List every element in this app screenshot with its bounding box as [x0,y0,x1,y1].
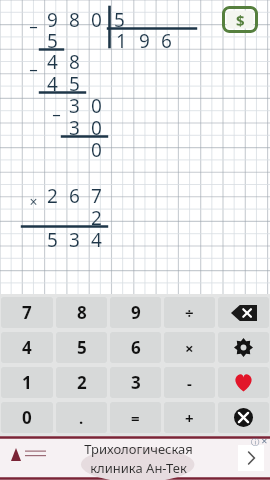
staticText: 3 [131,371,141,394]
staticText: 0 [91,137,102,159]
button[interactable]: Settings [218,332,269,363]
staticText: 2 [91,205,102,227]
staticText: 2 [77,371,87,394]
staticText: 1 [22,371,32,394]
staticText: 6 [69,183,80,205]
staticText: 9 [131,301,141,324]
staticText: 4 [47,71,58,93]
staticText: – [29,14,38,32]
staticText: 3 [69,93,80,115]
staticText: 4 [22,336,32,359]
staticText: 9 [47,7,58,29]
staticText: 5 [114,7,125,29]
staticText: 1 [116,28,127,50]
button[interactable]: + [164,402,215,433]
staticText: 8 [69,7,80,29]
button[interactable]: 6 [110,332,161,363]
staticText: 0 [91,115,102,137]
staticText: 0 [22,406,32,429]
button[interactable]: 8 [56,297,107,328]
button[interactable]: - [164,367,215,398]
button[interactable]: Favorite [218,367,269,398]
staticText: 7 [22,301,32,324]
button[interactable]: Advertisement [0,436,270,480]
staticText: 3 [69,227,80,249]
staticText: 8 [69,49,80,71]
staticText: 7 [91,183,102,205]
staticText: 0 [91,7,102,29]
staticText: 0 [91,93,102,115]
staticText: 5 [69,71,80,93]
staticText: 6 [131,336,141,359]
staticText: 9 [139,28,150,50]
staticText: × [29,192,38,210]
button[interactable]: Clear [218,402,269,433]
staticText: – [29,57,38,75]
staticText: 3 [69,115,80,137]
button[interactable]: . [56,402,107,433]
button[interactable]: 3 [110,367,161,398]
staticText: × [185,338,194,358]
staticText: - [187,373,192,393]
button[interactable]: 5 [56,332,107,363]
button[interactable]: 1 [1,367,53,398]
staticText: 4 [91,227,102,249]
staticText: 2 [47,183,58,205]
staticText: ⓘ [251,437,259,447]
staticText: клиника Ан-Тек [90,459,187,477]
button[interactable]: ÷ [164,297,215,328]
staticText: ✕ [261,437,268,446]
staticText: – [52,102,61,120]
staticText: 6 [161,28,172,50]
staticText: . [79,408,84,428]
staticText: 8 [77,301,87,324]
staticText: $ [236,10,245,30]
button[interactable]: × [164,332,215,363]
button[interactable]: 7 [1,297,53,328]
button[interactable]: Buy premium [222,6,258,33]
button[interactable]: 0 [1,402,53,433]
button[interactable]: Backspace [218,297,269,328]
button[interactable]: Open ad [238,445,264,471]
button[interactable]: 2 [56,367,107,398]
staticText: 5 [47,28,58,50]
staticText: = [131,408,140,428]
staticText: Трихологическая [84,440,193,458]
staticText: + [185,408,194,428]
staticText: 4 [47,49,58,71]
button[interactable]: 4 [1,332,53,363]
staticText: 5 [77,336,87,359]
staticText: 5 [47,227,58,249]
button[interactable]: = [110,402,161,433]
button[interactable]: 9 [110,297,161,328]
staticText: ÷ [185,303,194,323]
